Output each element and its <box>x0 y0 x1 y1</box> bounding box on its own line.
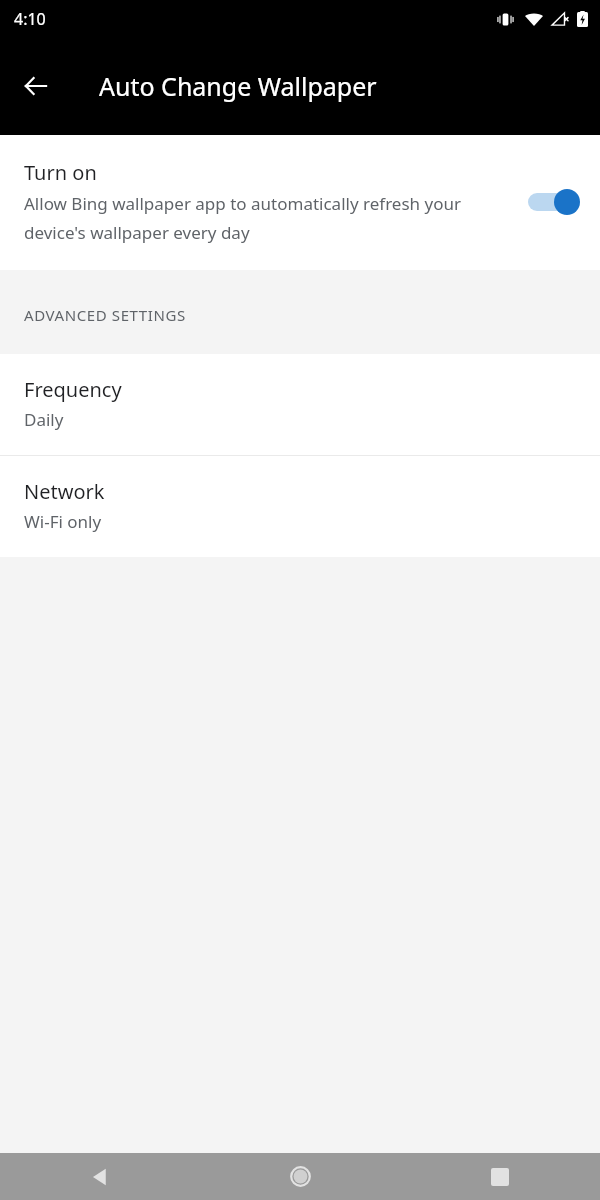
button[interactable]: Home <box>200 1153 400 1200</box>
staticText: ADVANCED SETTINGS <box>24 305 186 325</box>
staticText: Turn on <box>24 159 97 186</box>
staticText: Wi-Fi only <box>24 510 102 533</box>
button[interactable]: Back <box>0 1153 200 1200</box>
staticText: Daily <box>24 408 64 431</box>
staticText: Network <box>24 478 105 505</box>
button[interactable]: Back <box>12 62 60 110</box>
button[interactable]: Frequency <box>0 354 600 455</box>
button[interactable]: Turn on <box>0 135 600 270</box>
staticText: Allow Bing wallpaper app to automaticall… <box>24 192 512 244</box>
staticText: Frequency <box>24 376 122 403</box>
button[interactable]: Turn on toggle <box>524 185 580 219</box>
button[interactable]: Network <box>0 456 600 557</box>
staticText: 4:10 <box>14 8 46 30</box>
button[interactable]: Recent apps <box>400 1153 600 1200</box>
staticText: Auto Change Wallpaper <box>99 69 377 103</box>
